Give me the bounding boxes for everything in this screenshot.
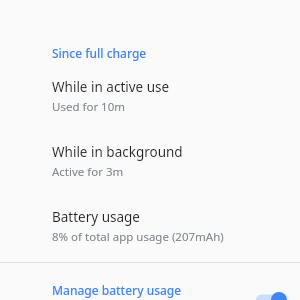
staticText: Active for 3m xyxy=(52,164,124,180)
staticText: 8% of total app usage (207mAh) xyxy=(52,229,224,245)
staticText: Battery usage xyxy=(52,208,140,226)
staticText: Manage battery usage xyxy=(52,282,182,298)
staticText: While in active use xyxy=(52,78,170,96)
button[interactable]: While in active use xyxy=(0,78,300,115)
button[interactable]: While in background xyxy=(0,143,300,180)
staticText: Used for 10m xyxy=(52,99,126,115)
staticText: Since full charge xyxy=(52,45,147,61)
button[interactable]: Battery usage xyxy=(0,208,300,245)
staticText: While in background xyxy=(52,143,183,161)
